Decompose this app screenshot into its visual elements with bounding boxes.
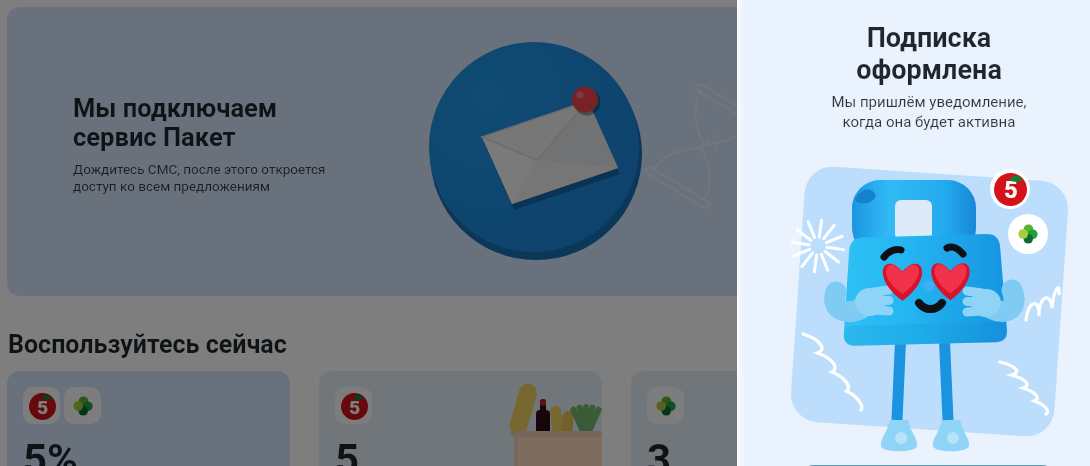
staticText: 3 (647, 435, 672, 466)
button[interactable]: 5 (319, 371, 602, 466)
staticText: Мы пришлём уведомление, когда она будет … (769, 93, 1089, 138)
staticText: 5 (335, 435, 360, 466)
staticText: Дождитесь СМС, после этого откроется дос… (73, 161, 326, 195)
staticText: 5% (23, 435, 79, 466)
button[interactable]: Мы подключаем сервис Пакет (7, 7, 897, 296)
button[interactable]: 5 (7, 371, 290, 466)
button[interactable]: 3 (631, 371, 914, 466)
staticText: 5 (1004, 176, 1018, 204)
staticText: 5 (349, 396, 361, 418)
staticText: 5 (37, 396, 49, 418)
button[interactable]: Продолжить (800, 465, 1056, 466)
staticText: Мы подключаем сервис Пакет (73, 93, 278, 152)
staticText: Воспользуйтесь сейчас (8, 330, 287, 359)
staticText: Подписка оформлена (769, 22, 1089, 92)
